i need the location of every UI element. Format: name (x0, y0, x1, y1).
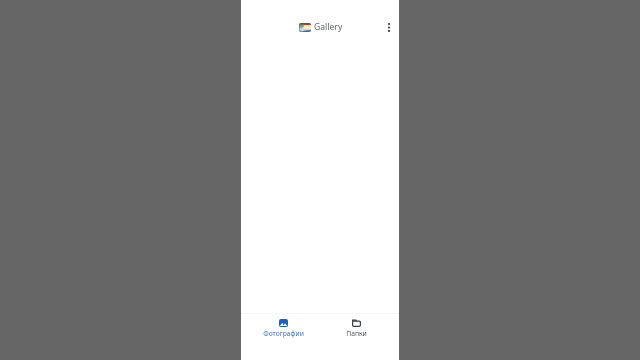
button[interactable]: Папки (320, 313, 392, 360)
button[interactable]: Gallery (289, 14, 353, 40)
staticText: Фотографии (263, 329, 304, 338)
button[interactable]: Фотографии (247, 313, 319, 360)
staticText: Папки (346, 329, 367, 338)
staticText: Gallery (314, 21, 343, 33)
button[interactable]: More options (379, 17, 399, 37)
